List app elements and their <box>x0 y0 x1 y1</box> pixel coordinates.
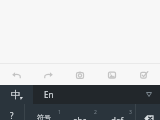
button[interactable] <box>24 104 62 120</box>
button[interactable] <box>62 104 99 120</box>
button[interactable]: 中 <box>0 85 33 104</box>
staticText: 符号 <box>37 113 51 120</box>
staticText: 2 <box>94 109 97 116</box>
button[interactable]: Hide keyboard <box>138 85 160 104</box>
button[interactable]: Camera <box>64 64 96 85</box>
staticText: En <box>44 89 54 100</box>
staticText: ? <box>10 110 14 120</box>
button[interactable] <box>99 104 136 120</box>
staticText: 1 <box>58 109 61 116</box>
staticText: def <box>111 115 124 120</box>
button[interactable]: Checklist <box>128 64 160 85</box>
button[interactable]: Undo <box>0 64 32 85</box>
button[interactable]: Backspace <box>136 104 160 120</box>
staticText: 3 <box>129 109 132 116</box>
button[interactable]: Redo <box>32 64 64 85</box>
staticText: abc <box>73 115 87 120</box>
button[interactable]: Gallery <box>96 64 128 85</box>
button[interactable]: En <box>33 85 65 104</box>
button[interactable]: Symbols <box>0 104 24 120</box>
staticText: 中 <box>11 88 21 101</box>
